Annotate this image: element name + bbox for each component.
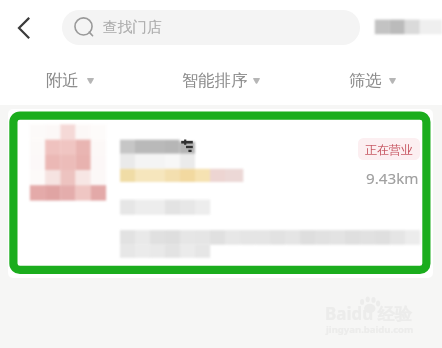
staticText: jingyan.baidu.com — [326, 323, 414, 336]
staticText: 智能排序 — [182, 70, 248, 91]
button[interactable]: 筛选 — [339, 60, 398, 96]
staticText: Baidu 经验 — [325, 302, 412, 325]
button[interactable]: 智能排序 — [172, 60, 262, 96]
button[interactable]: 正在营业 — [358, 138, 420, 160]
staticText: 9.43km — [366, 168, 419, 189]
staticText: 筛选 — [349, 70, 382, 91]
button[interactable] — [8, 109, 433, 278]
button[interactable]: Back — [3, 8, 43, 48]
staticText: 附近 — [46, 70, 79, 91]
button[interactable]: 查找门店 — [62, 10, 360, 45]
staticText: 查找门店 — [103, 18, 162, 36]
staticText: 正在营业 — [365, 142, 413, 157]
button[interactable]: 附近 — [36, 60, 96, 96]
